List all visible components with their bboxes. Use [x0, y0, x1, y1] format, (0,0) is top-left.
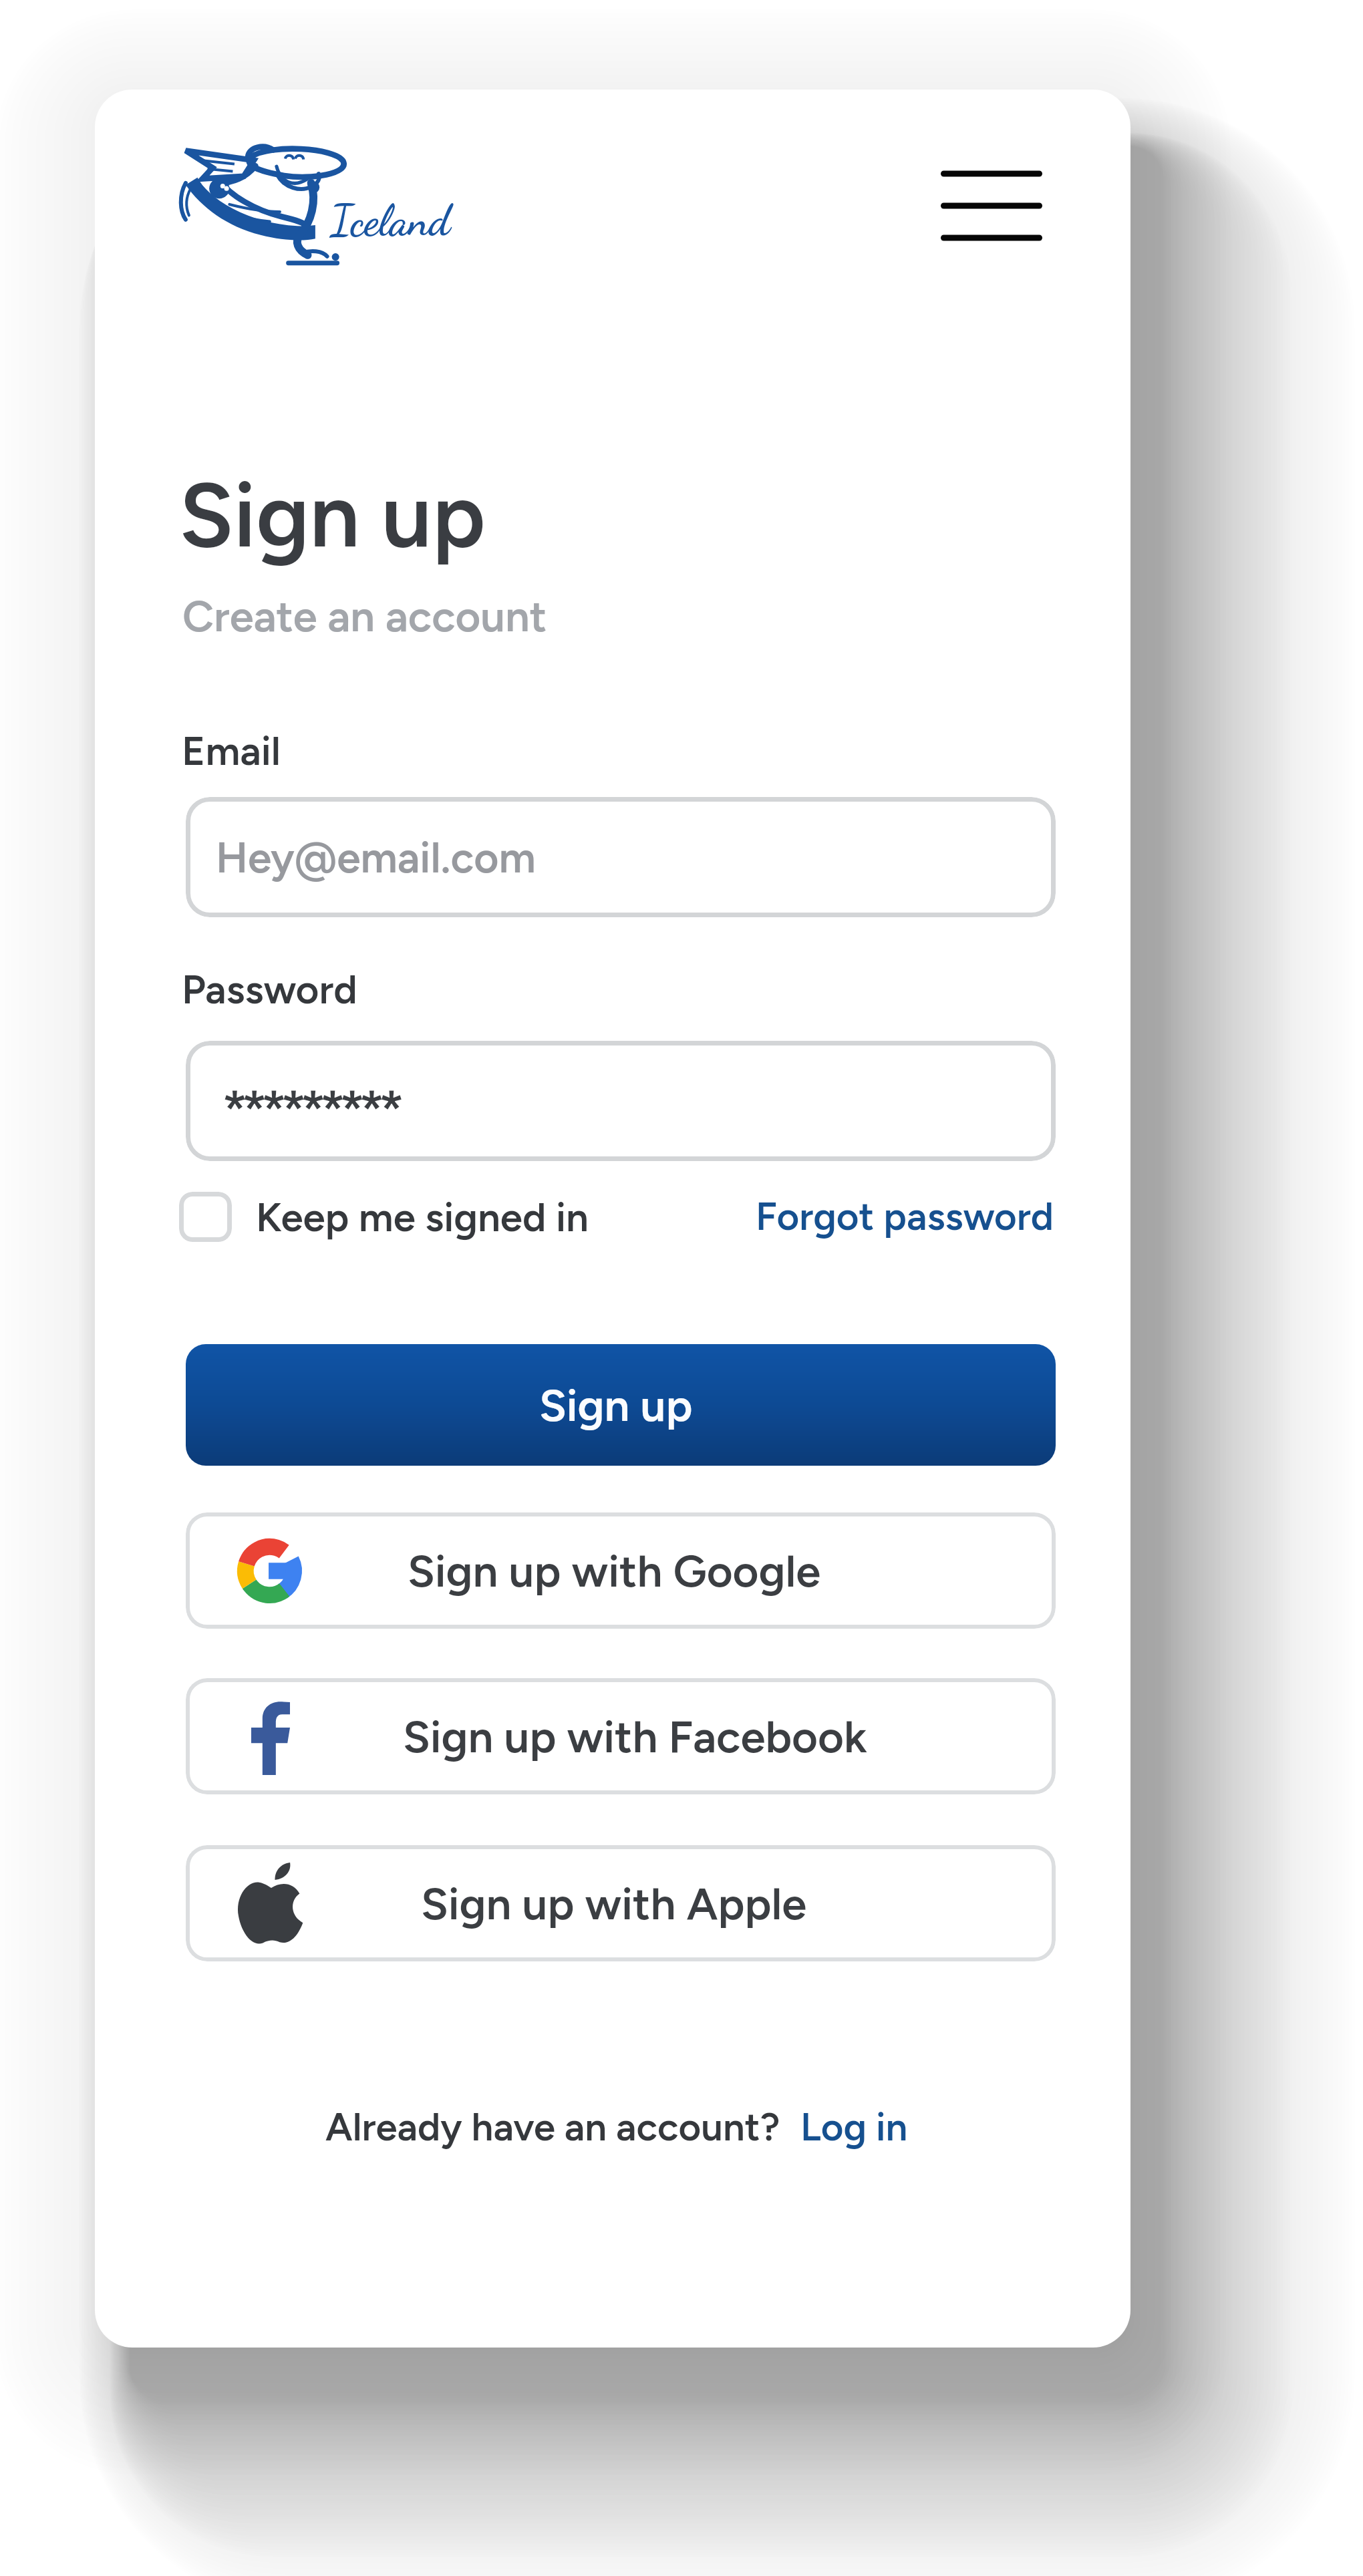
button[interactable]: Sign up with Google [186, 1512, 1056, 1629]
button[interactable]: Sign up [186, 1344, 1056, 1466]
button[interactable]: ********* [186, 1041, 1056, 1161]
button[interactable]: Keep me signed in [179, 1192, 589, 1242]
button[interactable]: Forgot password [756, 1193, 1054, 1240]
staticText: Sign up with Apple [421, 1877, 807, 1930]
button[interactable]: Open menu [921, 151, 1062, 261]
staticText: Already have an account? [325, 2104, 780, 2150]
staticText: Forgot password [756, 1193, 1054, 1240]
staticText: Email [182, 727, 281, 775]
staticText: Create an account [182, 590, 547, 642]
button[interactable]: Sign up with Facebook [186, 1678, 1056, 1794]
staticText: Sign up with Google [408, 1544, 821, 1597]
button[interactable]: Log in [800, 2104, 908, 2150]
staticText: Sign up with Facebook [403, 1710, 867, 1763]
staticText: Keep me signed in [256, 1193, 589, 1241]
button[interactable]: Hey@email.com [186, 797, 1056, 917]
button[interactable]: Sign up with Apple [186, 1845, 1056, 1961]
staticText: ********* [222, 1078, 398, 1142]
staticText: Sign up [179, 462, 486, 569]
staticText: Iceland [330, 195, 450, 247]
staticText: Password [182, 965, 357, 1013]
staticText: Log in [800, 2104, 908, 2150]
staticText: Sign up [539, 1378, 693, 1432]
staticText: Hey@email.com [216, 832, 536, 883]
